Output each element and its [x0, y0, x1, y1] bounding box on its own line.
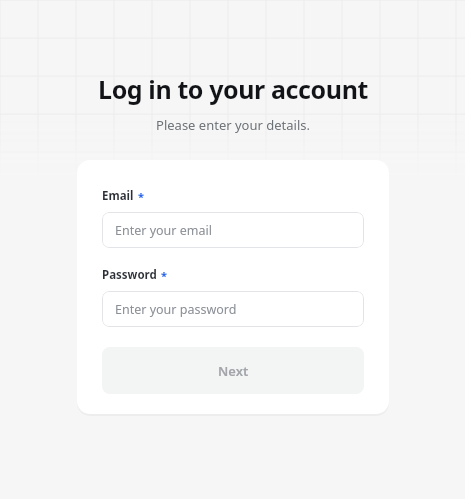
staticText: Email	[102, 188, 134, 204]
button[interactable]: Email input	[102, 212, 364, 248]
staticText: Log in to your account	[98, 72, 368, 106]
staticText: Enter your email	[115, 222, 212, 239]
button[interactable]: Next	[102, 347, 364, 394]
staticText: Please enter your details.	[156, 116, 310, 134]
staticText: *	[161, 268, 167, 283]
staticText: Password	[102, 267, 157, 283]
staticText: *	[138, 189, 144, 204]
staticText: Enter your password	[115, 301, 237, 318]
button[interactable]: Password input	[102, 291, 364, 327]
staticText: Next	[218, 362, 249, 380]
